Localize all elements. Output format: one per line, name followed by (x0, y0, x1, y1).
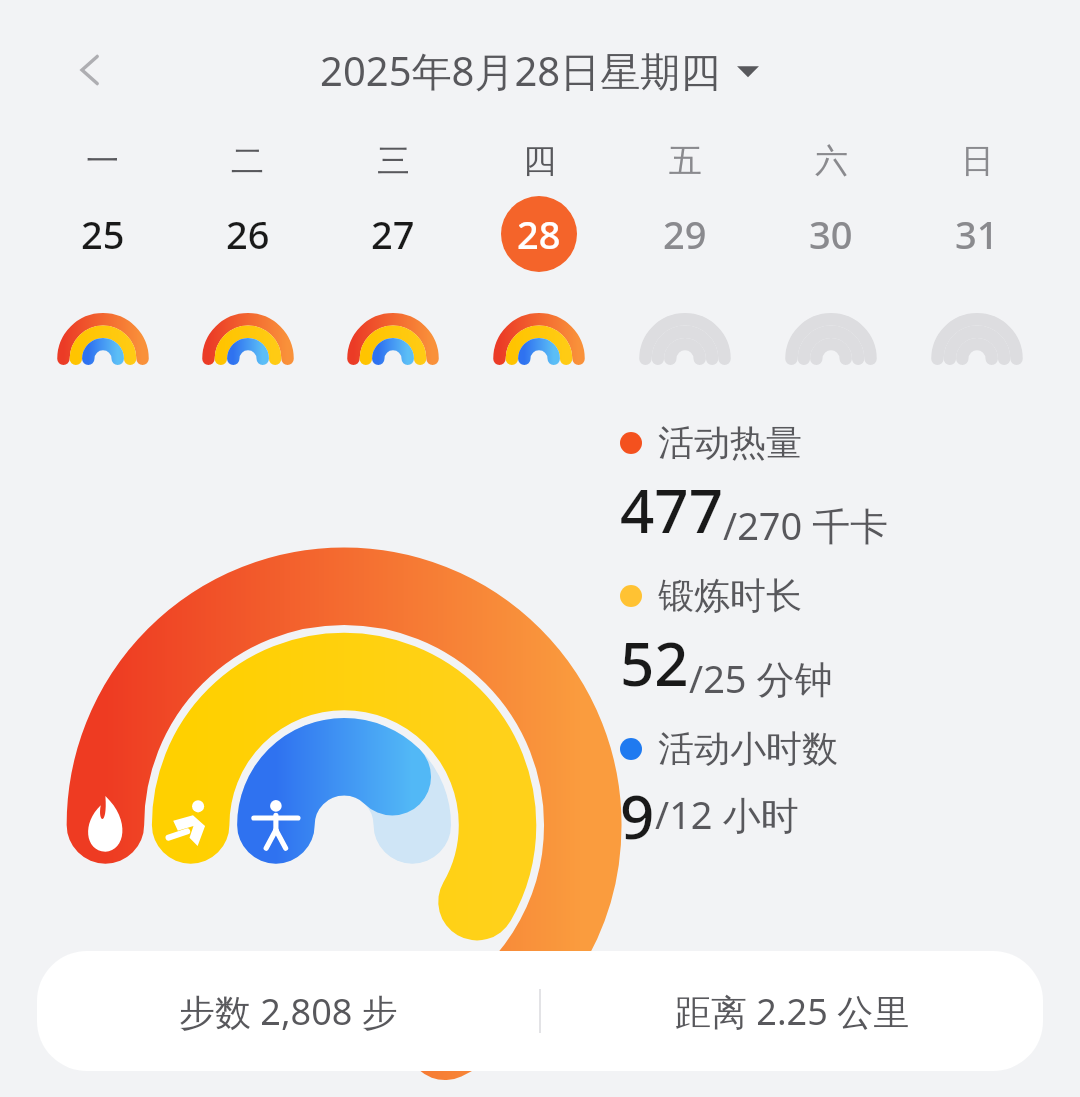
staticText: 活动小时数 (658, 726, 838, 771)
button[interactable]: 锻炼时长 (620, 573, 833, 704)
staticText: 30 (809, 208, 853, 260)
button[interactable]: 五 (612, 140, 758, 364)
staticText: 27 (371, 208, 415, 260)
button[interactable]: 日 (904, 140, 1050, 364)
staticText: 477 (620, 469, 723, 551)
staticText: 三 (377, 140, 410, 182)
button[interactable]: 一 (30, 140, 175, 364)
staticText: 步数 2,808 步 (179, 987, 398, 1036)
button[interactable]: 步数 2,808 步 (37, 951, 1043, 1071)
button[interactable]: 2025年8月28日星期四 (320, 43, 761, 98)
staticText: 52 (620, 622, 689, 704)
staticText: 29 (663, 208, 707, 260)
staticText: 31 (955, 208, 999, 260)
button[interactable]: 六 (758, 140, 904, 364)
button[interactable]: 活动热量 (620, 420, 889, 551)
button[interactable]: 活动小时数 (620, 726, 838, 840)
staticText: 日 (961, 140, 994, 182)
staticText: 锻炼时长 (658, 573, 802, 618)
button[interactable]: 四 (466, 140, 612, 364)
staticText: 2025年8月28日星期四 (320, 43, 721, 98)
staticText: /25 分钟 (689, 652, 833, 704)
staticText: /270 千卡 (723, 499, 889, 551)
staticText: /12 小时 (655, 788, 799, 840)
staticText: 六 (815, 140, 848, 182)
staticText: 一 (86, 140, 119, 182)
staticText: 四 (523, 140, 556, 182)
button[interactable]: 二 (175, 140, 320, 364)
staticText: 25 (81, 208, 125, 260)
staticText: 26 (226, 208, 270, 260)
staticText: 9 (620, 775, 655, 840)
staticText: 活动热量 (658, 420, 802, 465)
staticText: 28 (517, 208, 561, 260)
staticText: 五 (669, 140, 702, 182)
staticText: 距离 2.25 公里 (675, 987, 910, 1036)
button[interactable]: 三 (320, 140, 466, 364)
button[interactable]: Back (56, 36, 124, 104)
staticText: 二 (231, 140, 264, 182)
